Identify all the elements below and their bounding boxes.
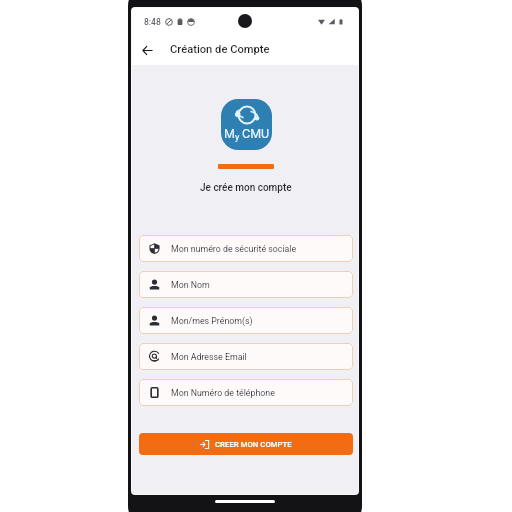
button[interactable]: Mon Numéro de téléphone [139,379,353,406]
staticText: 8:48 [144,17,161,27]
staticText: Création de Compte [170,43,270,56]
button[interactable]: Mon Nom [139,271,353,298]
staticText: Mon/mes Prénom(s) [171,316,253,326]
staticText: Mon Numéro de téléphone [171,388,275,398]
button[interactable]: Mon numéro de sécurité sociale [139,235,353,262]
staticText: y [235,132,240,143]
staticText: CMU [242,126,270,141]
staticText: M [224,126,235,141]
staticText: Mon numéro de sécurité sociale [171,244,297,254]
staticText: Mon Nom [171,280,210,290]
button[interactable]: Back [136,39,158,61]
staticText: Je crée mon compte [200,182,292,194]
button[interactable]: CREER MON COMPTE [139,433,353,455]
button[interactable]: Mon Adresse Email [139,343,353,370]
staticText: CREER MON COMPTE [215,440,292,449]
staticText: Mon Adresse Email [171,352,247,362]
button[interactable]: Mon/mes Prénom(s) [139,307,353,334]
